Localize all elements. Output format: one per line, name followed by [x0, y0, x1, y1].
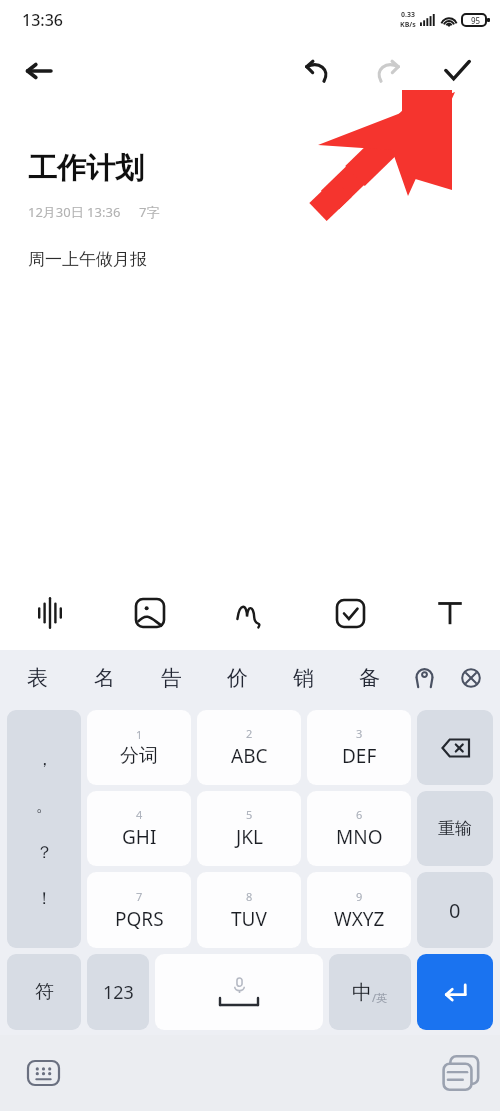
staticText: 0	[449, 897, 461, 924]
button[interactable]: Switch keyboard	[20, 1050, 66, 1096]
button[interactable]: Back	[16, 48, 62, 94]
staticText: GHI	[122, 824, 157, 850]
staticText: 6	[356, 807, 363, 822]
staticText: 0.33	[401, 10, 415, 20]
staticText: /英	[372, 990, 388, 1005]
staticText: 8	[246, 889, 253, 904]
staticText: 工作计划	[28, 150, 144, 187]
staticText: 1	[136, 727, 143, 742]
button[interactable]: Checklist	[300, 576, 400, 650]
staticText: 123	[103, 980, 134, 1005]
staticText: JKL	[236, 824, 263, 850]
button[interactable]: Image	[100, 576, 200, 650]
staticText: ？	[36, 842, 53, 863]
button[interactable]: 重输	[417, 791, 493, 866]
staticText: KB/s	[400, 20, 416, 30]
staticText: MNO	[336, 824, 383, 850]
button[interactable]: 中	[329, 954, 411, 1030]
button[interactable]: Handwriting	[200, 576, 300, 650]
button[interactable]: 7	[87, 872, 191, 948]
button[interactable]: 9	[307, 872, 411, 948]
staticText: DEF	[342, 743, 377, 769]
staticText: 符	[35, 980, 54, 1004]
staticText: 中	[352, 980, 372, 1005]
button[interactable]: ，	[7, 710, 81, 948]
staticText: 4	[136, 807, 143, 822]
staticText: 5	[246, 807, 253, 822]
button[interactable]: 表	[4, 650, 71, 705]
staticText: 价	[227, 665, 248, 691]
button[interactable]: Delete	[417, 710, 493, 785]
button[interactable]: Redo	[364, 48, 410, 94]
staticText: 。	[36, 795, 53, 816]
button[interactable]: 3	[307, 710, 411, 785]
button[interactable]: 2	[197, 710, 301, 785]
button[interactable]	[155, 954, 323, 1030]
staticText: 3	[356, 726, 363, 741]
staticText: ABC	[231, 743, 268, 769]
staticText: TUV	[231, 906, 267, 932]
button[interactable]: Undo	[294, 48, 340, 94]
staticText: 重输	[438, 818, 472, 839]
button[interactable]: 销	[270, 650, 336, 705]
button[interactable]: 6	[307, 791, 411, 866]
button[interactable]: Text format	[400, 576, 500, 650]
button[interactable]: 1	[87, 710, 191, 785]
staticText: 7字	[139, 203, 160, 221]
staticText: 名	[94, 665, 115, 691]
staticText: ！	[36, 888, 53, 909]
button[interactable]: 5	[197, 791, 301, 866]
button[interactable]: 8	[197, 872, 301, 948]
staticText: 表	[27, 665, 48, 691]
button[interactable]: 备	[336, 650, 402, 705]
staticText: 周一上午做月报	[28, 249, 147, 270]
staticText: 告	[161, 665, 182, 691]
button[interactable]: Done	[434, 48, 480, 94]
button[interactable]: 符	[7, 954, 81, 1030]
staticText: 95	[471, 15, 481, 26]
staticText: 9	[356, 889, 363, 904]
button[interactable]: 0	[417, 872, 493, 948]
button[interactable]: Emoji	[402, 650, 446, 705]
button[interactable]: Close suggestions	[446, 650, 496, 705]
button[interactable]: 价	[204, 650, 270, 705]
staticText: 销	[293, 665, 314, 691]
button[interactable]: 123	[87, 954, 149, 1030]
button[interactable]: 4	[87, 791, 191, 866]
staticText: 12月30日 13:36	[28, 203, 121, 221]
button[interactable]: 告	[138, 650, 204, 705]
staticText: 7	[136, 889, 143, 904]
staticText: 2	[246, 726, 253, 741]
button[interactable]: Voice	[0, 576, 100, 650]
staticText: WXYZ	[334, 906, 385, 932]
staticText: ，	[36, 749, 53, 770]
staticText: 备	[359, 665, 380, 691]
button[interactable]: Enter	[417, 954, 493, 1030]
staticText: 分词	[120, 744, 158, 768]
staticText: 13:36	[22, 9, 63, 31]
button[interactable]: 名	[71, 650, 138, 705]
staticText: PQRS	[115, 906, 164, 932]
